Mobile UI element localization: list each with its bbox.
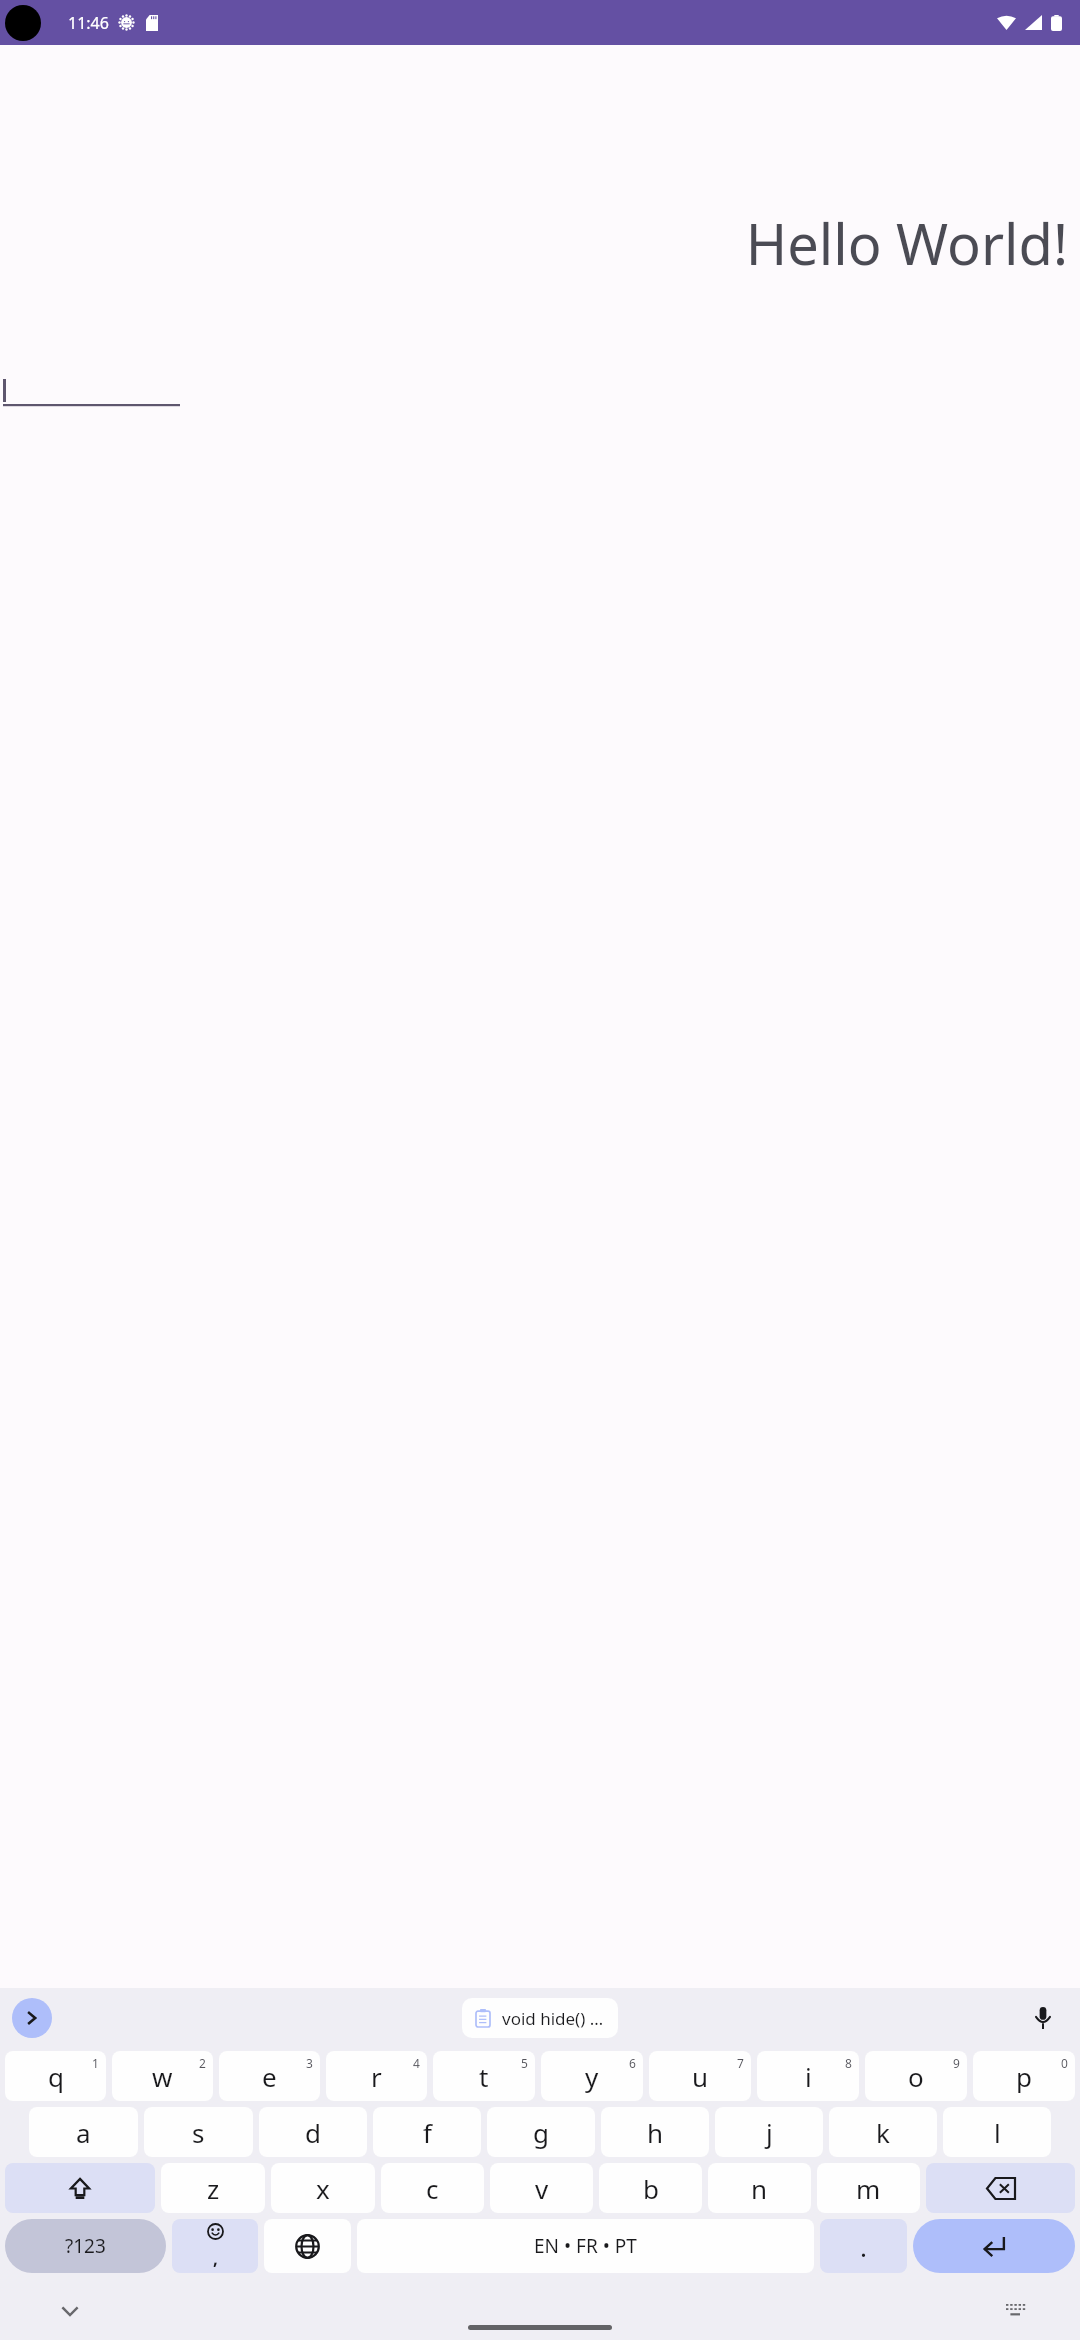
button[interactable]: g	[487, 2107, 595, 2157]
button[interactable]: a	[29, 2107, 138, 2157]
staticText: c	[426, 2171, 439, 2206]
staticText: v	[535, 2171, 549, 2206]
staticText: s	[192, 2115, 205, 2150]
button[interactable]: l	[943, 2107, 1051, 2157]
staticText: x	[316, 2171, 330, 2206]
button[interactable]: o	[865, 2051, 967, 2101]
button[interactable]: j	[715, 2107, 823, 2157]
staticText: f	[423, 2115, 432, 2150]
button[interactable]: t	[433, 2051, 535, 2101]
button[interactable]: EN • FR • PT	[357, 2219, 814, 2273]
staticText: g	[533, 2115, 549, 2150]
button[interactable]	[0, 375, 180, 415]
staticText: i	[805, 2059, 812, 2094]
staticText: b	[643, 2171, 659, 2206]
button[interactable]: ?123	[5, 2219, 166, 2273]
button[interactable]: e	[219, 2051, 320, 2101]
button[interactable]: p	[973, 2051, 1075, 2101]
staticText: 0	[1061, 2055, 1068, 2071]
button[interactable]: r	[326, 2051, 427, 2101]
staticText: 6	[629, 2055, 636, 2071]
button[interactable]: void hide() …	[462, 1998, 618, 2038]
button[interactable]: del	[926, 2163, 1075, 2213]
staticText: ?123	[65, 2233, 106, 2259]
button[interactable]: w	[112, 2051, 213, 2101]
button[interactable]: s	[144, 2107, 253, 2157]
staticText: w	[152, 2059, 173, 2094]
button[interactable]: c	[381, 2163, 484, 2213]
button[interactable]: emoji	[172, 2219, 258, 2273]
staticText: y	[585, 2059, 599, 2094]
button[interactable]: k	[829, 2107, 937, 2157]
button[interactable]: Change keyboard	[996, 2291, 1036, 2331]
button[interactable]: m	[817, 2163, 920, 2213]
staticText: e	[262, 2059, 277, 2094]
button[interactable]: h	[601, 2107, 709, 2157]
staticText: d	[305, 2115, 321, 2150]
staticText: 1	[92, 2055, 99, 2071]
staticText: o	[908, 2059, 924, 2094]
staticText: Hello World!	[0, 205, 1068, 281]
staticText: 11:46	[68, 12, 109, 34]
staticText: k	[876, 2115, 890, 2150]
staticText: l	[994, 2115, 1001, 2150]
button[interactable]: x	[271, 2163, 375, 2213]
staticText: EN • FR • PT	[534, 2233, 637, 2259]
staticText: 7	[737, 2055, 744, 2071]
button[interactable]: Voice input	[1026, 2001, 1060, 2035]
staticText: 8	[845, 2055, 852, 2071]
staticText: t	[479, 2059, 489, 2094]
button[interactable]: z	[161, 2163, 265, 2213]
button[interactable]: b	[599, 2163, 702, 2213]
staticText: p	[1016, 2059, 1032, 2094]
staticText: a	[76, 2115, 91, 2150]
staticText: q	[48, 2059, 64, 2094]
staticText: ,	[213, 2247, 218, 2270]
staticText: .	[860, 2229, 867, 2264]
button[interactable]: shift	[5, 2163, 155, 2213]
button[interactable]: f	[373, 2107, 481, 2157]
staticText: z	[207, 2171, 220, 2206]
staticText: void hide() …	[502, 2007, 604, 2030]
button[interactable]: .	[820, 2219, 907, 2273]
button[interactable]: enter	[913, 2219, 1075, 2273]
button[interactable]: q	[5, 2051, 106, 2101]
staticText: 5	[521, 2055, 528, 2071]
button[interactable]: u	[649, 2051, 751, 2101]
button[interactable]: v	[490, 2163, 593, 2213]
staticText: h	[647, 2115, 664, 2150]
staticText: n	[751, 2171, 768, 2206]
button[interactable]: y	[541, 2051, 643, 2101]
button[interactable]: Hide keyboard	[50, 2291, 90, 2331]
staticText: u	[692, 2059, 709, 2094]
staticText: 3	[306, 2055, 313, 2071]
staticText: j	[766, 2115, 773, 2150]
button[interactable]: i	[757, 2051, 859, 2101]
staticText: r	[371, 2059, 382, 2094]
staticText: m	[856, 2171, 881, 2206]
button[interactable]: Expand toolbar	[12, 1998, 52, 2038]
button[interactable]: n	[708, 2163, 811, 2213]
staticText: 4	[413, 2055, 420, 2071]
button[interactable]: globe	[264, 2219, 351, 2273]
button[interactable]: d	[259, 2107, 367, 2157]
staticText: 2	[199, 2055, 206, 2071]
staticText: 9	[953, 2055, 960, 2071]
